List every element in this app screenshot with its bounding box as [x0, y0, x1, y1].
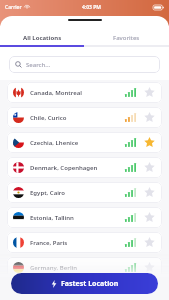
button[interactable]: Add favorite	[143, 186, 156, 199]
button[interactable]: Czechia, Lhenice	[7, 132, 162, 153]
button[interactable]: Add favorite	[143, 111, 156, 124]
staticText: Fastest Location	[61, 279, 119, 289]
button[interactable]: Add favorite	[143, 236, 156, 249]
staticText: Czechia, Lhenice	[30, 139, 79, 147]
button[interactable]: Egypt, Cairo	[7, 182, 162, 203]
button[interactable]: Add favorite	[143, 261, 156, 274]
staticText: Canada, Montreal	[30, 89, 82, 97]
button[interactable]: All Locations	[0, 31, 84, 45]
staticText: Egypt, Cairo	[30, 189, 66, 197]
button[interactable]: Add favorite	[143, 161, 156, 174]
staticText: Chile, Curico	[30, 114, 67, 122]
staticText: 4:03 PM	[82, 4, 101, 11]
button[interactable]: Estonia, Tallinn	[7, 207, 162, 228]
staticText: Carrier	[5, 4, 22, 11]
staticText: Search...	[26, 61, 51, 69]
button[interactable]: Add favorite	[143, 86, 156, 99]
button[interactable]: Favorites	[84, 31, 169, 45]
staticText: Germany, Berlin	[30, 264, 78, 272]
staticText: France, Paris	[30, 239, 68, 247]
staticText: All Locations	[23, 34, 62, 42]
button[interactable]: Canada, Montreal	[7, 82, 162, 103]
staticText: Favorites	[113, 34, 140, 42]
button[interactable]: Search...	[9, 56, 160, 73]
staticText: Estonia, Tallinn	[30, 214, 74, 222]
button[interactable]: France, Paris	[7, 232, 162, 253]
button[interactable]: Remove favorite	[143, 136, 156, 149]
button[interactable]: Add favorite	[143, 211, 156, 224]
button[interactable]: Germany, Berlin	[7, 257, 162, 278]
button[interactable]: Chile, Curico	[7, 107, 162, 128]
button[interactable]: Fastest Location	[11, 273, 158, 294]
button[interactable]: Denmark, Copenhagen	[7, 157, 162, 178]
staticText: Denmark, Copenhagen	[30, 164, 98, 172]
